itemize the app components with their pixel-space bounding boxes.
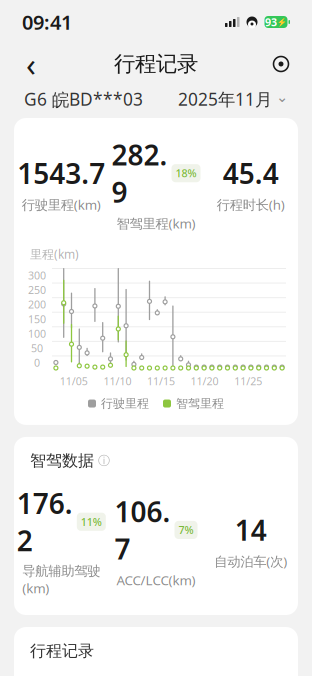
staticText: 11/10	[103, 374, 131, 388]
staticText: 11%	[81, 515, 102, 529]
staticText: 50	[31, 341, 43, 355]
staticText: ⌄	[276, 89, 288, 105]
staticText: 行程记录	[30, 641, 94, 661]
staticText: ‹	[26, 43, 36, 85]
staticText: 行驶里程(km)	[22, 196, 101, 213]
staticText: 行程时长(h)	[217, 196, 285, 213]
staticText: 2025年11月	[178, 87, 272, 110]
staticText: 09:41	[22, 9, 72, 35]
staticText: 11/15	[147, 374, 175, 388]
staticText: 300	[28, 268, 46, 282]
staticText: 智驾里程	[176, 396, 224, 411]
staticText: 250	[28, 283, 46, 297]
button[interactable]: G6 皖BD***03	[24, 87, 143, 110]
staticText: 200	[28, 297, 46, 312]
button[interactable]: 设置	[264, 47, 298, 81]
staticText: 45.4	[223, 155, 279, 192]
staticText: 11/20	[191, 374, 219, 388]
staticText: 18%	[175, 166, 196, 180]
staticText: 里程(km)	[30, 246, 79, 262]
staticText: 0	[34, 356, 40, 370]
staticText: 行驶里程	[101, 396, 149, 411]
staticText: 智驾数据	[30, 451, 94, 471]
staticText: G6 皖BD***03	[24, 87, 143, 110]
staticText: 自动泊车(次)	[214, 552, 287, 570]
staticText: 11/25	[234, 374, 262, 388]
staticText: 106.7	[114, 493, 170, 567]
staticText: 1543.7	[17, 155, 105, 192]
staticText: 行程记录	[114, 51, 198, 77]
staticText: 智驾里程(km)	[116, 214, 195, 232]
staticText: ⓘ	[98, 453, 110, 468]
staticText: 100	[28, 326, 46, 341]
button[interactable]: 2025年11月	[178, 87, 288, 110]
button[interactable]: 返回	[14, 47, 48, 81]
staticText: 176.2	[17, 485, 73, 559]
staticText: 11/05	[60, 374, 88, 388]
staticText: 150	[28, 312, 46, 326]
staticText: 导航辅助驾驶(km)	[22, 563, 100, 597]
staticText: ⚡	[277, 17, 287, 26]
staticText: 7%	[178, 523, 193, 537]
staticText: 93	[265, 15, 277, 29]
staticText: ACC/LCC(km)	[116, 571, 195, 589]
staticText: 282.9	[111, 136, 167, 210]
staticText: 14	[235, 511, 267, 548]
